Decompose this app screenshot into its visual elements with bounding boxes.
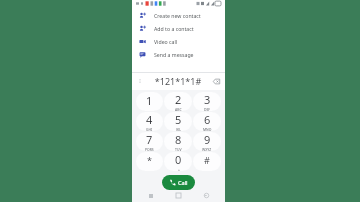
button[interactable]: 4 <box>136 112 163 131</box>
staticText: 3 <box>204 92 211 107</box>
staticText: 9 <box>204 132 211 147</box>
staticText: *121*1*1# <box>144 75 212 87</box>
button[interactable]: Home <box>174 191 183 200</box>
staticText: MNO <box>203 127 212 131</box>
button[interactable]: 1 <box>136 92 163 111</box>
staticText: TUV <box>175 147 182 151</box>
button[interactable]: Video call <box>132 35 225 48</box>
button[interactable]: 3 <box>193 92 221 111</box>
button[interactable]: # <box>193 152 221 171</box>
button[interactable]: Recents <box>146 191 155 200</box>
staticText: 7 <box>146 132 153 147</box>
button[interactable]: 8 <box>164 132 192 151</box>
staticText: 0 <box>175 152 182 167</box>
button[interactable]: Create new contact <box>132 9 225 22</box>
staticText: # <box>204 154 210 166</box>
staticText: JKL <box>176 127 181 131</box>
button[interactable]: * <box>136 152 163 171</box>
button[interactable]: Call <box>162 175 195 190</box>
button[interactable]: 0 <box>164 152 192 171</box>
button[interactable]: More options <box>136 77 144 85</box>
staticText: 4 <box>146 112 153 127</box>
staticText: 6 <box>204 112 211 127</box>
button[interactable]: 6 <box>193 112 221 131</box>
button[interactable]: Back <box>202 191 211 200</box>
staticText: 5 <box>175 112 182 127</box>
staticText: 2 <box>175 92 182 107</box>
staticText: + <box>178 167 180 171</box>
staticText: 1 <box>146 93 153 108</box>
button[interactable]: Send a message <box>132 48 225 61</box>
button[interactable]: 7 <box>136 132 163 151</box>
staticText: Create new contact <box>154 12 201 19</box>
button[interactable]: 5 <box>164 112 192 131</box>
staticText: GHI <box>146 127 153 131</box>
staticText: * <box>147 154 152 166</box>
staticText: PQRS <box>145 147 154 151</box>
staticText: Send a message <box>154 51 194 58</box>
staticText: ABC <box>175 107 182 111</box>
button[interactable]: Backspace <box>212 77 221 86</box>
staticText: DEF <box>204 107 211 111</box>
staticText: Video call <box>154 38 178 45</box>
button[interactable]: 9 <box>193 132 221 151</box>
staticText: WXYZ <box>202 147 212 151</box>
button[interactable]: 2 <box>164 92 192 111</box>
button[interactable]: Add to a contact <box>132 22 225 35</box>
staticText: 8 <box>175 132 182 147</box>
staticText: Add to a contact <box>154 25 194 32</box>
staticText: Call <box>178 179 188 186</box>
